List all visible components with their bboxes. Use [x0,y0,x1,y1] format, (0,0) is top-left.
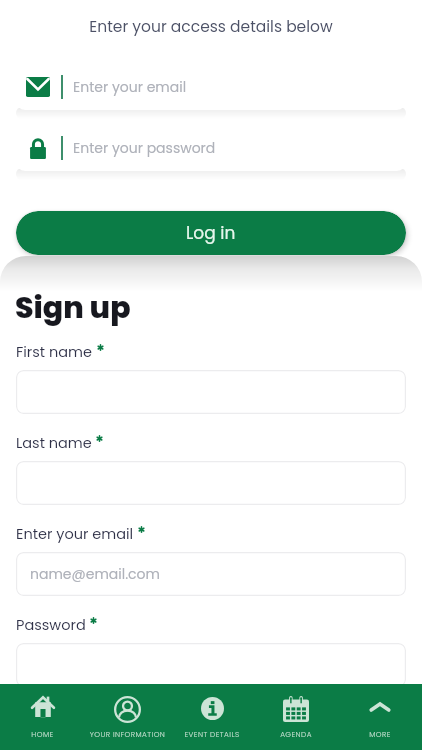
staticText: First name [16,342,93,362]
staticText: YOUR INFORMATION [85,729,170,739]
button[interactable]: More [338,684,422,750]
staticText: EVENT DETAILS [170,729,254,739]
button[interactable]: Log in [16,211,406,255]
staticText: Enter your email [73,77,187,97]
button[interactable]: Event details [170,684,254,750]
staticText: Enter your email [16,524,134,544]
staticText: Log in [186,221,236,245]
staticText: MORE [338,729,422,739]
staticText: AGENDA [254,729,338,739]
staticText: Sign up [15,287,131,329]
staticText: Enter your password [73,138,216,158]
button[interactable] [16,370,406,414]
button[interactable] [16,461,406,505]
button[interactable]: Enter your email [16,63,406,110]
button[interactable]: Agenda [254,684,338,750]
button[interactable] [16,643,406,687]
button[interactable]: Your information [85,684,170,750]
staticText: HOME [0,729,85,739]
button[interactable]: Enter your password [16,124,406,171]
staticText: Last name [16,433,92,453]
button[interactable]: Home [0,684,85,750]
button[interactable]: name@email.com [16,552,406,596]
staticText: name@email.com [30,564,160,584]
staticText: Password [16,615,86,635]
staticText: Enter your access details below [0,16,422,38]
